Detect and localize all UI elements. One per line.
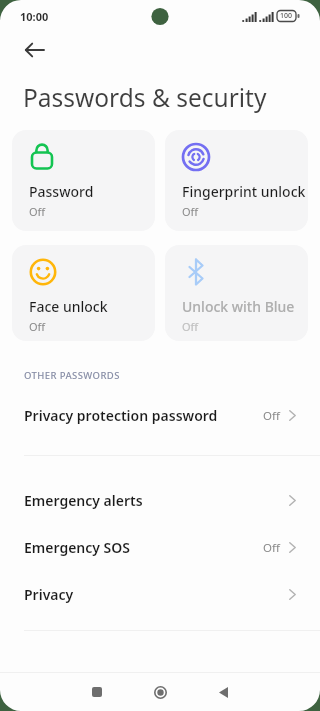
staticText: OTHER PASSWORDS	[24, 369, 120, 382]
button[interactable]: Privacy protection password	[0, 395, 320, 436]
button[interactable]: Emergency alerts	[0, 480, 320, 521]
button[interactable]	[128, 673, 192, 711]
staticText: Emergency alerts	[24, 491, 143, 510]
staticText: Face unlock	[29, 297, 155, 316]
staticText: Off	[182, 319, 199, 334]
staticText: Privacy protection password	[24, 406, 218, 425]
staticText: Emergency SOS	[24, 538, 131, 557]
button[interactable]: Privacy	[0, 574, 320, 615]
button[interactable]	[66, 673, 128, 711]
button[interactable]: Face unlock	[12, 245, 155, 341]
button[interactable]: Fingerprint unlock	[165, 130, 308, 231]
button[interactable]: Unlock with Bluetooth device	[165, 245, 308, 341]
staticText: 10:00	[20, 9, 49, 24]
staticText: Off	[29, 204, 46, 219]
staticText: Unlock with Bluetooth device	[182, 297, 294, 316]
button[interactable]	[192, 673, 254, 711]
staticText: Off	[29, 319, 46, 334]
staticText: Passwords & security	[23, 81, 267, 114]
staticText: Off	[263, 408, 280, 424]
staticText: Password	[29, 182, 155, 201]
staticText: 100	[280, 11, 293, 21]
button[interactable]: Password	[12, 130, 155, 231]
staticText: Fingerprint unlock	[182, 182, 308, 201]
staticText: Off	[182, 204, 199, 219]
button[interactable]: Emergency SOS	[0, 527, 320, 568]
staticText: Off	[263, 540, 280, 556]
staticText: Privacy	[24, 585, 74, 604]
button[interactable]	[16, 38, 52, 62]
